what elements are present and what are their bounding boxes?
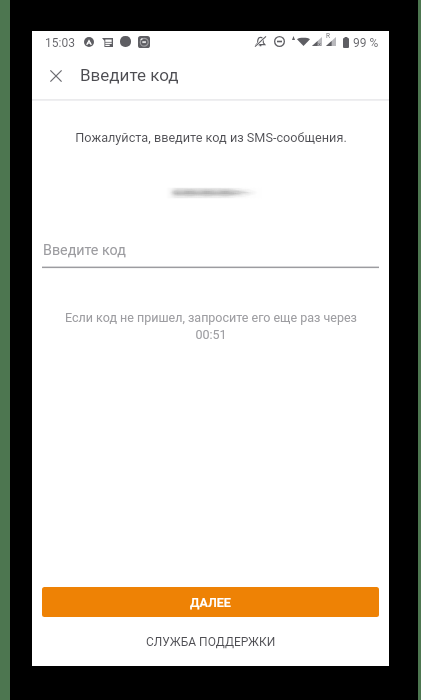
staticText: 99 %: [353, 36, 379, 50]
button[interactable]: СЛУЖБА ПОДДЕРЖКИ: [32, 626, 389, 666]
staticText: Введите код: [43, 242, 126, 259]
staticText: Пожалуйста, введите код из SMS-сообщения…: [75, 130, 347, 145]
staticText: R: [326, 32, 331, 40]
staticText: x: [318, 40, 321, 47]
staticText: 15:03: [45, 36, 75, 50]
staticText: Введите код: [80, 65, 179, 85]
staticText: ДАЛЕЕ: [190, 595, 231, 610]
button[interactable]: Close: [38, 58, 74, 94]
button[interactable]: Введите код: [42, 239, 379, 269]
button[interactable]: ДАЛЕЕ: [42, 587, 379, 617]
staticText: СЛУЖБА ПОДДЕРЖКИ: [146, 635, 276, 649]
staticText: Если код не пришел, запросите его еще ра…: [65, 310, 357, 325]
staticText: 00:51: [195, 327, 227, 342]
